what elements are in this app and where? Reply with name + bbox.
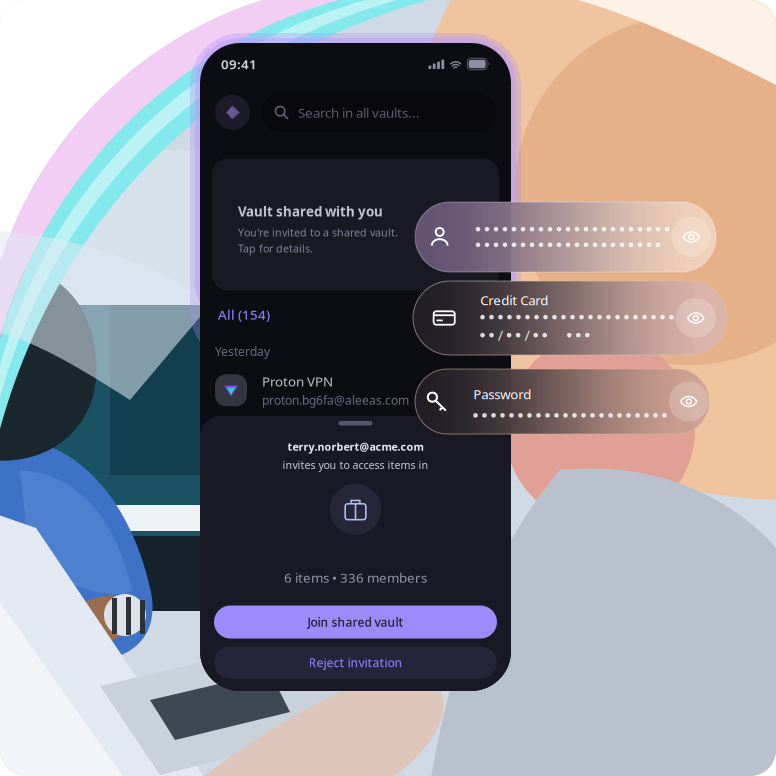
button[interactable]: Account: [215, 95, 250, 130]
staticText: Join shared vault: [307, 614, 403, 630]
staticText: terry.norbert@acme.com: [287, 439, 423, 454]
button[interactable]: All (154): [218, 306, 270, 323]
staticText: Credit Card: [480, 291, 548, 309]
button[interactable]: Join shared vault: [214, 605, 497, 638]
button[interactable]: Reveal: [667, 379, 711, 423]
staticText: Tap for details.: [238, 241, 313, 256]
staticText: Proton VPN: [262, 372, 333, 390]
button[interactable]: Sort: [471, 303, 493, 325]
staticText: All (154): [218, 306, 270, 323]
staticText: 09:41: [221, 55, 257, 73]
staticText: Password: [473, 385, 531, 403]
button[interactable]: Proton VPN: [200, 372, 511, 408]
staticText: You're invited to a shared vault.: [238, 225, 398, 239]
staticText: Search in all vaults...: [298, 104, 420, 121]
staticText: /: [524, 325, 529, 345]
button[interactable]: Vault shared with you: [212, 158, 499, 290]
staticText: Vault shared with you: [238, 202, 383, 220]
button[interactable]: Reveal: [674, 296, 718, 340]
staticText: invites you to access items in: [282, 458, 428, 472]
staticText: /: [498, 325, 503, 345]
staticText: Reject invitation: [308, 655, 402, 670]
button[interactable]: Reveal: [669, 215, 713, 259]
staticText: 6 items • 336 members: [284, 569, 427, 586]
button[interactable]: Reject invitation: [214, 646, 497, 678]
staticText: Yesterday: [215, 343, 270, 359]
staticText: proton.bg6fa@aleeas.com: [262, 392, 409, 408]
